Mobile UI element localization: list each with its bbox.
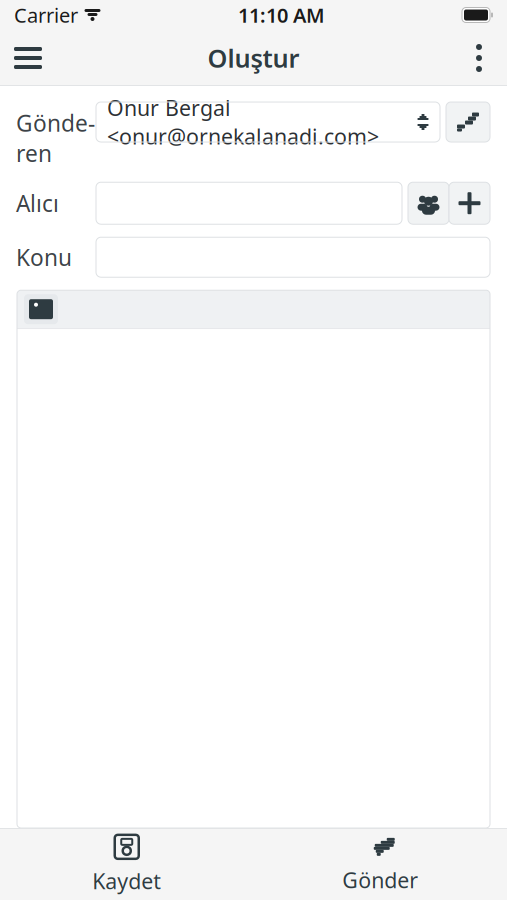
button[interactable]: Menu	[0, 30, 56, 86]
button[interactable]: Add recipient	[449, 182, 490, 224]
button[interactable]: Onur Bergal <onur@ornekalanadi.com>	[96, 102, 440, 142]
button[interactable]: Subject	[96, 237, 490, 277]
staticText: Gönder	[342, 866, 418, 894]
staticText: Onur Bergal <onur@ornekalanadi.com>	[107, 94, 379, 150]
staticText: Kaydet	[92, 867, 161, 895]
button[interactable]: More options	[451, 30, 507, 86]
button[interactable]: Gönder	[253, 828, 507, 900]
button[interactable]: Kaydet	[0, 828, 253, 900]
staticText: Alıcı	[16, 188, 59, 218]
staticText: Oluştur	[207, 41, 299, 75]
button[interactable]: Recipient	[96, 182, 402, 224]
button[interactable]: Insert image	[24, 294, 58, 324]
staticText: Konu	[16, 242, 72, 272]
button[interactable]: Contacts	[408, 182, 449, 224]
staticText: Carrier	[14, 2, 78, 28]
staticText: Gönde- ren	[16, 108, 95, 168]
staticText: 11:10 AM	[238, 2, 325, 28]
button[interactable]: Edit sender	[446, 102, 490, 142]
